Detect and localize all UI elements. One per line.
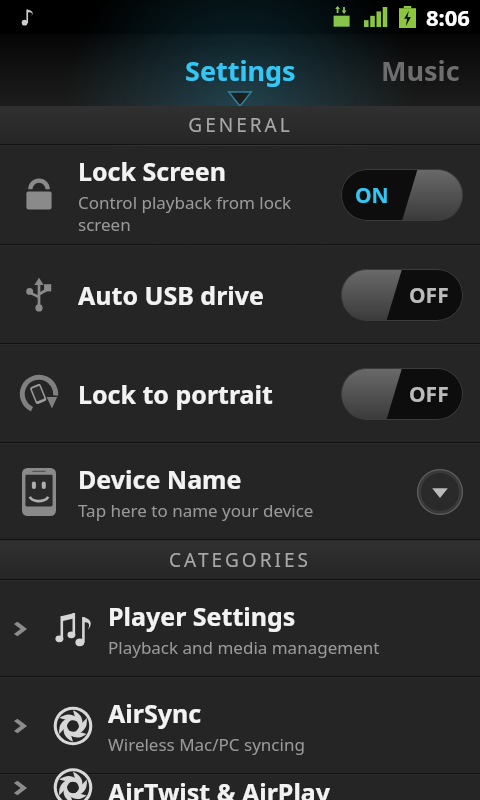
staticText: Control playback from lock screen — [78, 191, 292, 236]
button[interactable]: AirTwist & AirPlay — [0, 775, 480, 800]
staticText: Lock Screen — [78, 154, 226, 188]
staticText: ON — [355, 181, 389, 210]
staticText: OFF — [409, 380, 449, 409]
button[interactable]: Device Name — [0, 444, 480, 539]
staticText: AirTwist & AirPlay — [108, 775, 331, 800]
staticText: Auto USB drive — [78, 278, 264, 312]
staticText: Settings — [185, 52, 296, 89]
button[interactable]: Toggle off — [341, 368, 463, 420]
staticText: AirSync — [108, 696, 202, 730]
staticText: Lock to portrait — [78, 377, 273, 411]
staticText: CATEGORIES — [169, 547, 311, 573]
button[interactable]: Player Settings — [0, 581, 480, 676]
button[interactable]: Expand — [417, 469, 463, 515]
staticText: GENERAL — [188, 112, 293, 138]
button[interactable]: Toggle on — [341, 169, 463, 221]
staticText: Playback and media management — [108, 636, 380, 659]
button[interactable]: Toggle off — [341, 269, 463, 321]
staticText: 8:06 — [426, 2, 470, 32]
staticText: Tap here to name your device — [78, 499, 314, 522]
staticText: Player Settings — [108, 599, 296, 633]
staticText: OFF — [409, 281, 449, 310]
button[interactable]: Lock to portrait — [0, 345, 480, 442]
staticText: Wireless Mac/PC syncing — [108, 733, 305, 756]
button[interactable]: Settings — [130, 34, 350, 106]
button[interactable]: Lock Screen — [0, 146, 480, 244]
button[interactable]: Music — [360, 34, 480, 106]
button[interactable]: AirSync — [0, 678, 480, 773]
staticText: Device Name — [78, 462, 242, 496]
staticText: Music — [381, 52, 460, 89]
button[interactable]: Auto USB drive — [0, 246, 480, 343]
